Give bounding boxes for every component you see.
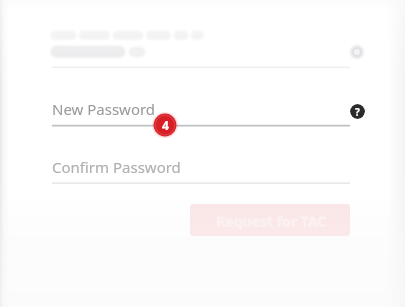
button[interactable]: New Password xyxy=(52,99,350,128)
staticText: ? xyxy=(355,105,360,119)
staticText: 4 xyxy=(162,117,169,133)
staticText: Request for TAC xyxy=(216,212,327,231)
button[interactable]: Help about New Password xyxy=(350,104,365,119)
button[interactable]: Confirm Password xyxy=(52,157,350,186)
button[interactable]: Help about User ID xyxy=(349,44,365,60)
staticText: Request for TAC xyxy=(215,211,326,230)
button[interactable]: Tutorial step 4 xyxy=(152,112,178,138)
staticText: New Password xyxy=(52,99,156,119)
staticText: Confirm Password xyxy=(52,157,181,177)
